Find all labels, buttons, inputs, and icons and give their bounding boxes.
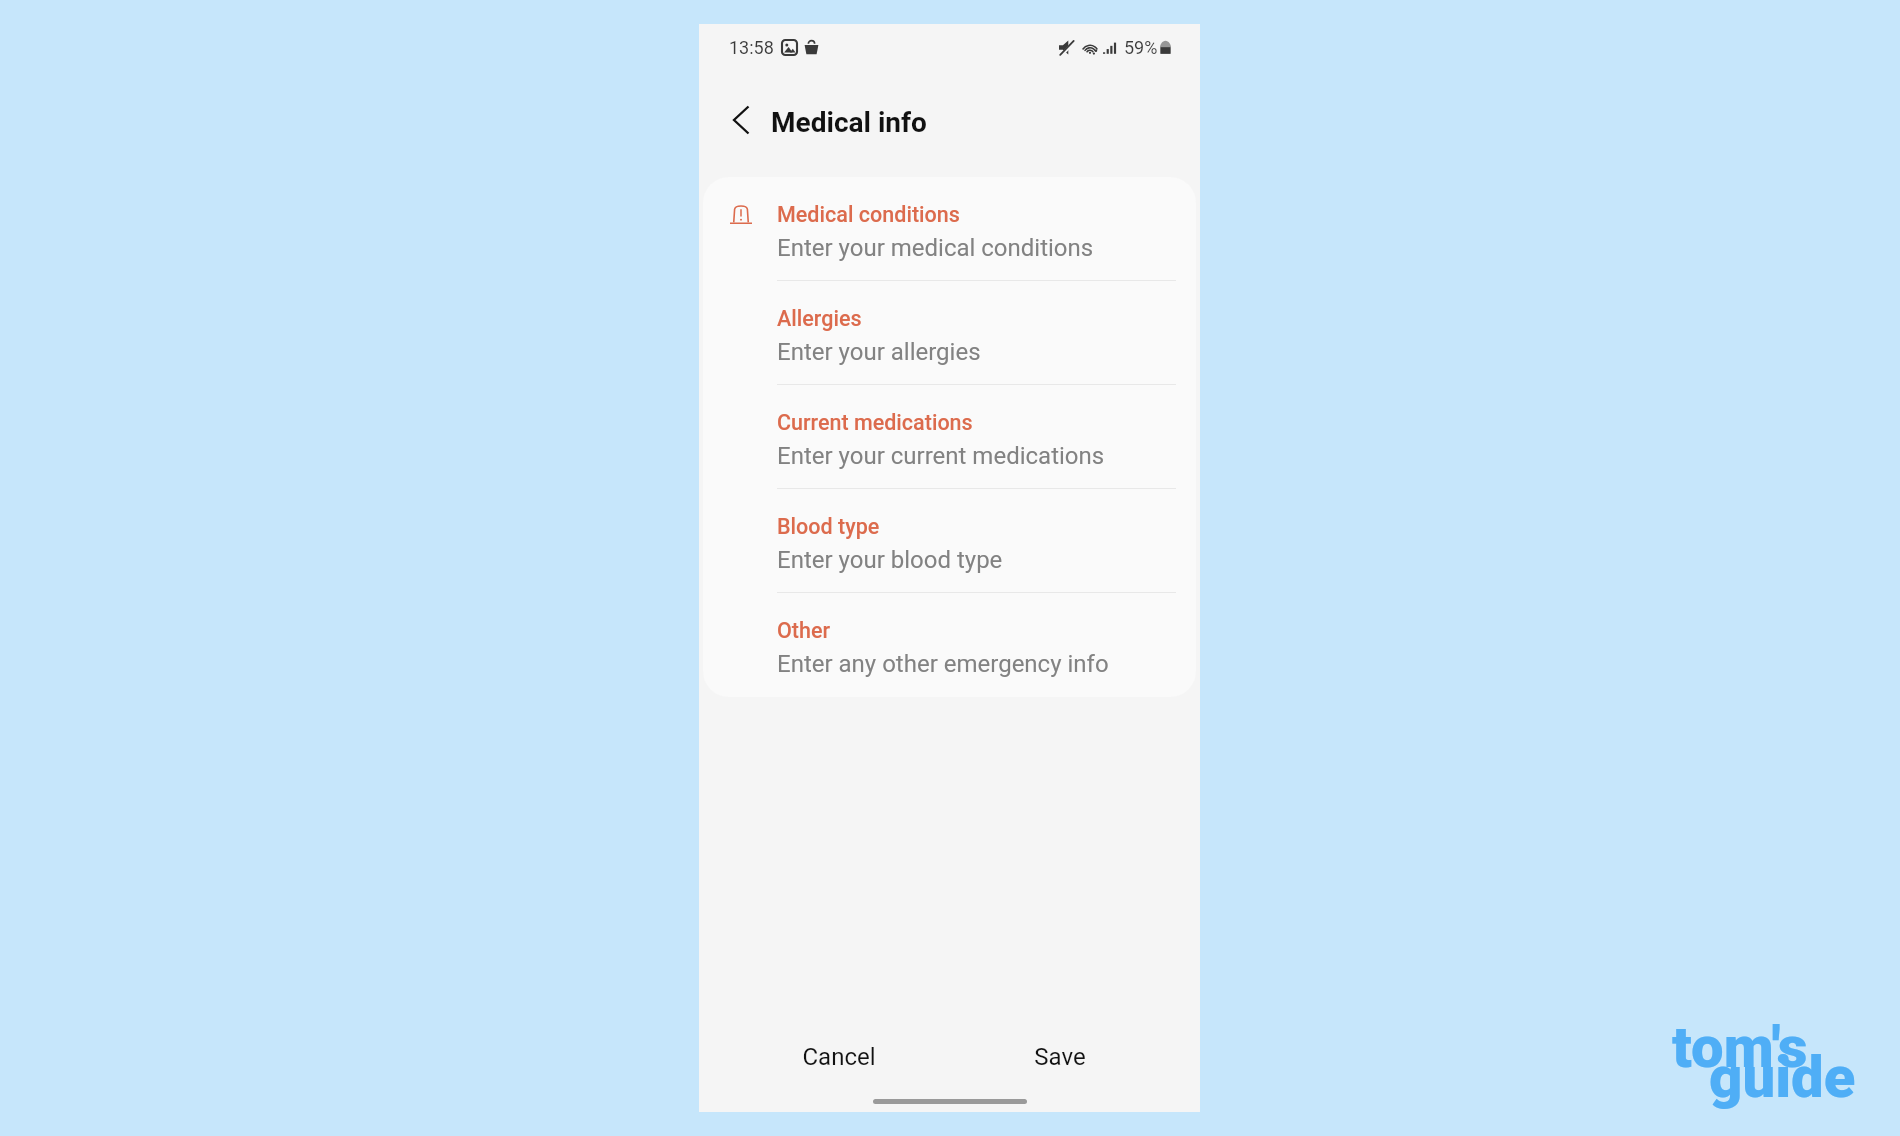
- staticText: 13:58: [729, 37, 774, 58]
- staticText: Enter your allergies: [777, 338, 981, 366]
- button[interactable]: Other: [703, 593, 1196, 697]
- button[interactable]: Back: [719, 98, 763, 142]
- staticText: Save: [1034, 1043, 1086, 1071]
- staticText: Blood type: [777, 514, 880, 539]
- staticText: Medical info: [771, 106, 927, 139]
- staticText: Current medications: [777, 410, 973, 435]
- staticText: tom's: [1672, 1013, 1808, 1081]
- staticText: guide: [1709, 1043, 1856, 1111]
- button[interactable]: Allergies: [703, 281, 1196, 385]
- staticText: Enter any other emergency info: [777, 650, 1109, 678]
- button[interactable]: Medical conditions: [703, 177, 1196, 281]
- button[interactable]: Current medications: [703, 385, 1196, 489]
- button[interactable]: Blood type: [703, 489, 1196, 593]
- staticText: Medical conditions: [777, 202, 960, 227]
- button[interactable]: Cancel: [729, 1025, 949, 1089]
- staticText: Enter your blood type: [777, 546, 1003, 574]
- staticText: Other: [777, 618, 831, 643]
- staticText: Cancel: [802, 1043, 876, 1071]
- button[interactable]: Save: [949, 1025, 1170, 1089]
- staticText: 59%: [1124, 37, 1158, 58]
- staticText: Enter your medical conditions: [777, 234, 1094, 262]
- staticText: Allergies: [777, 306, 862, 331]
- staticText: Enter your current medications: [777, 442, 1105, 470]
